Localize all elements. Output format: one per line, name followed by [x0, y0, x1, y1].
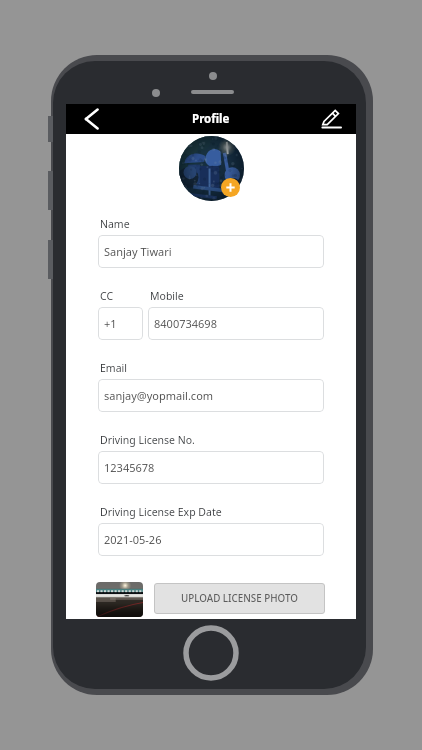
button[interactable]: Profile photo [179, 136, 244, 201]
button[interactable]: UPLOAD LICENSE PHOTO [154, 583, 325, 614]
staticText: Profile [192, 111, 230, 127]
staticText: Driving License No. [100, 433, 195, 447]
button[interactable]: sanjay@yopmail.com [98, 379, 324, 412]
button[interactable]: License photo [96, 582, 143, 617]
staticText: Sanjay Tiwari [104, 244, 172, 259]
button[interactable]: 12345678 [98, 451, 324, 484]
staticText: Email [100, 361, 127, 375]
button[interactable]: Edit [317, 104, 347, 134]
staticText: CC [100, 289, 114, 303]
staticText: 8400734698 [154, 316, 217, 331]
staticText: Driving License Exp Date [100, 505, 222, 519]
staticText: Mobile [150, 289, 184, 303]
staticText: sanjay@yopmail.com [104, 388, 214, 403]
staticText: +1 [104, 316, 117, 331]
staticText: Name [100, 217, 130, 231]
staticText: 12345678 [104, 460, 155, 475]
staticText: UPLOAD LICENSE PHOTO [181, 592, 298, 605]
button[interactable]: 8400734698 [148, 307, 324, 340]
button[interactable]: Add photo [221, 178, 240, 197]
button[interactable]: Back [76, 104, 106, 134]
button[interactable]: 2021-05-26 [98, 523, 324, 556]
staticText: 2021-05-26 [104, 532, 162, 547]
button[interactable]: Sanjay Tiwari [98, 235, 324, 268]
button[interactable]: +1 [98, 307, 143, 340]
